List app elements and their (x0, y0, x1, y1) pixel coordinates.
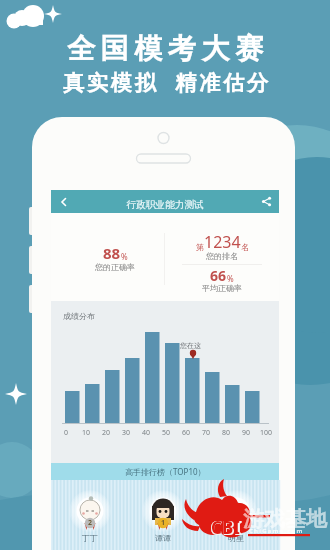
staticText: % (121, 251, 128, 262)
staticText: 您在这 (180, 341, 201, 350)
staticText: 全国模考大赛 (67, 31, 269, 66)
staticText: % (227, 273, 234, 284)
staticText: CBI (210, 515, 243, 541)
staticText: 成绩分布 (63, 311, 95, 321)
staticText: 真实模拟 精准估分 (63, 68, 271, 97)
staticText: 您的正确率 (95, 262, 135, 272)
staticText: 80 (222, 428, 231, 438)
staticText: 3 (234, 518, 239, 528)
staticText: 100 (260, 428, 273, 438)
staticText: 高手排行榜（TOP10） (125, 466, 206, 477)
staticText: 名 (241, 242, 249, 252)
button[interactable]: 3 (216, 491, 256, 544)
button[interactable]: Share (253, 190, 279, 213)
staticText: CBI (211, 516, 240, 539)
button[interactable]: Back (51, 190, 77, 213)
staticText: 第 (196, 242, 204, 252)
staticText: 20 (102, 428, 111, 438)
staticText: 50 (162, 428, 171, 438)
staticText: 0 (64, 428, 69, 438)
staticText: 丁丁 (82, 533, 98, 543)
button[interactable]: 2 (70, 491, 110, 544)
staticText: 谭谭 (155, 533, 171, 543)
staticText: 40 (142, 428, 151, 438)
staticText: 10 (82, 428, 91, 438)
staticText: 2 (88, 518, 93, 528)
staticText: 1234 (204, 231, 241, 253)
staticText: 90 (242, 428, 251, 438)
staticText: 行政职业能力测试 (77, 199, 253, 211)
staticText: 70 (202, 428, 211, 438)
button[interactable]: 1 (143, 491, 183, 544)
staticText: 明星 (228, 533, 244, 543)
staticText: 平均正确率 (202, 283, 242, 293)
staticText: 游戏基地 (243, 506, 327, 532)
staticText: ChiGame.com (249, 527, 304, 535)
staticText: 88 (103, 243, 121, 263)
staticText: 1 (161, 518, 166, 528)
staticText: 66 (210, 266, 227, 285)
staticText: 60 (182, 428, 191, 438)
staticText: 30 (122, 428, 131, 438)
staticText: 您的排名 (206, 251, 238, 261)
